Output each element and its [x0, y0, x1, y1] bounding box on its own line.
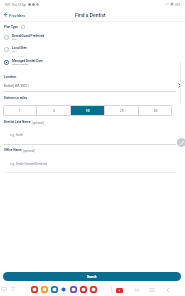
button[interactable]: 25 [105, 105, 138, 116]
staticText: Dentist Last Name [4, 120, 31, 124]
button[interactable]: Plan Type [4, 25, 25, 29]
staticText: 9:01 Thu, 13 Apr [5, 3, 27, 6]
button[interactable]: App 2 [41, 286, 48, 293]
button[interactable]: Managed Dental Care [0, 57, 185, 68]
staticText: e.g., Smile General Dentistry [10, 162, 48, 166]
staticText: Plan Type [4, 25, 19, 29]
button[interactable]: YouTube [116, 288, 123, 293]
button[interactable]: App 3 [51, 286, 58, 293]
staticText: (optional) [32, 121, 45, 124]
staticText: 50 [154, 109, 158, 113]
staticText: 10 [86, 109, 90, 113]
button[interactable]: App 5 [70, 286, 77, 293]
button[interactable]: Home [149, 287, 155, 293]
button[interactable]: 10 [71, 105, 104, 116]
button[interactable]: App 1 [31, 286, 38, 293]
button[interactable]: Bothell, WA 98011 [0, 81, 185, 91]
button[interactable]: App 7 [90, 286, 97, 293]
button[interactable]: Search [3, 272, 181, 281]
button[interactable]: Dentist Last Name [4, 120, 45, 124]
staticText: (optional) [23, 149, 36, 152]
button[interactable]: Edit [177, 138, 185, 147]
staticText: Office Name [4, 148, 22, 152]
other: Info [21, 25, 25, 29]
staticText: e.g., Smith [10, 133, 24, 136]
staticText: DHMO/Prepaid [12, 63, 29, 66]
staticText: Search [87, 275, 97, 279]
button[interactable]: Keyboard [1, 286, 7, 292]
staticText: Bothell, WA 98011 [4, 84, 30, 88]
staticText: Providers [9, 13, 26, 17]
button[interactable]: App 6 [80, 286, 87, 293]
staticText: Distance in miles [4, 96, 28, 100]
button[interactable]: Providers [3, 8, 26, 21]
button[interactable]: 1 [3, 105, 36, 116]
staticText: Location [4, 75, 17, 79]
staticText: DentalGuard Preferred [12, 34, 45, 38]
staticText: PPO [12, 38, 17, 41]
button[interactable]: Office Name [4, 148, 36, 152]
button[interactable]: DentalGuard Preferred [0, 32, 185, 43]
staticText: Managed Dental Care [12, 59, 43, 63]
button[interactable]: Local Elite [0, 44, 185, 55]
staticText: 5 [53, 109, 55, 113]
button[interactable]: 5 [37, 105, 70, 116]
staticText: PPO [12, 50, 17, 53]
button[interactable]: 50 [139, 105, 172, 116]
staticText: Local Elite [12, 46, 27, 50]
button[interactable]: App drawer [10, 286, 16, 292]
button[interactable]: Recents [134, 287, 140, 293]
button[interactable]: App 4 [60, 286, 67, 293]
button[interactable]: Back [165, 287, 171, 293]
staticText: 1 [19, 109, 21, 113]
staticText: 25 [120, 109, 124, 113]
staticText: 76% [175, 3, 181, 6]
staticText: Find a Dentist [75, 12, 106, 18]
